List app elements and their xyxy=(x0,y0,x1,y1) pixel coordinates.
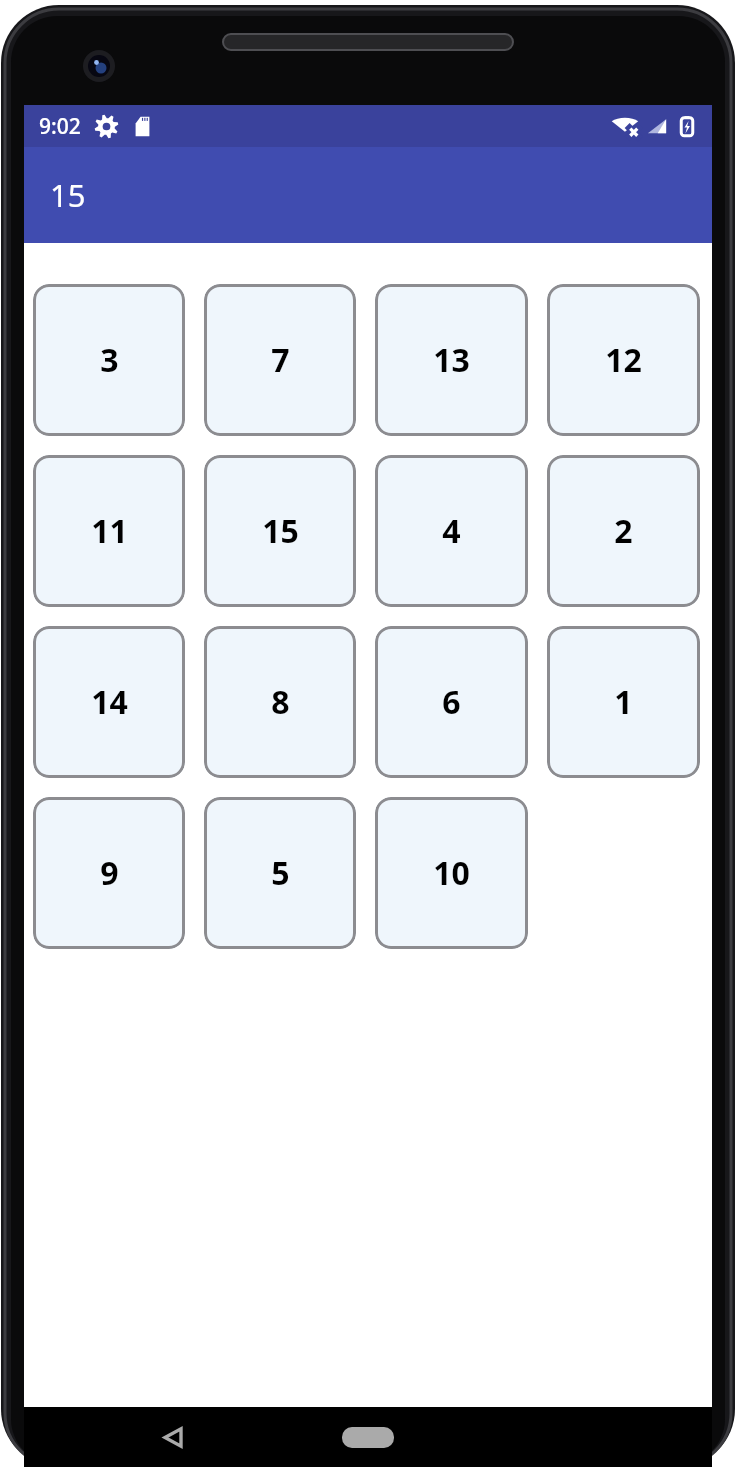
staticText: 1 xyxy=(614,680,633,724)
button[interactable]: Home xyxy=(333,1415,403,1459)
button[interactable]: 12 xyxy=(547,284,700,436)
button[interactable]: 10 xyxy=(375,797,528,949)
button[interactable]: 2 xyxy=(547,455,700,607)
button[interactable]: 9 xyxy=(33,797,185,949)
staticText: 2 xyxy=(614,509,633,553)
button[interactable]: 8 xyxy=(204,626,356,778)
button[interactable]: 1 xyxy=(547,626,700,778)
staticText: 3 xyxy=(100,338,119,382)
button[interactable]: 6 xyxy=(375,626,528,778)
button[interactable]: 5 xyxy=(204,797,356,949)
button[interactable]: 11 xyxy=(33,455,185,607)
staticText: 7 xyxy=(271,338,290,382)
staticText: 5 xyxy=(271,851,290,895)
staticText: 13 xyxy=(433,338,470,382)
staticText: 11 xyxy=(91,509,128,553)
button[interactable]: 14 xyxy=(33,626,185,778)
staticText: 8 xyxy=(271,680,290,724)
staticText: 12 xyxy=(605,338,642,382)
staticText: 10 xyxy=(433,851,470,895)
staticText: 4 xyxy=(442,509,461,553)
button[interactable]: 15 xyxy=(204,455,356,607)
button[interactable]: 4 xyxy=(375,455,528,607)
button[interactable]: Back xyxy=(149,1413,197,1461)
staticText: 9 xyxy=(100,851,119,895)
staticText: 14 xyxy=(91,680,128,724)
staticText: 6 xyxy=(442,680,461,724)
staticText: 15 xyxy=(262,509,299,553)
button[interactable]: 7 xyxy=(204,284,356,436)
button[interactable]: 3 xyxy=(33,284,185,436)
staticText: 15 xyxy=(50,174,86,216)
button[interactable]: 13 xyxy=(375,284,528,436)
staticText: 9:02 xyxy=(39,112,81,141)
